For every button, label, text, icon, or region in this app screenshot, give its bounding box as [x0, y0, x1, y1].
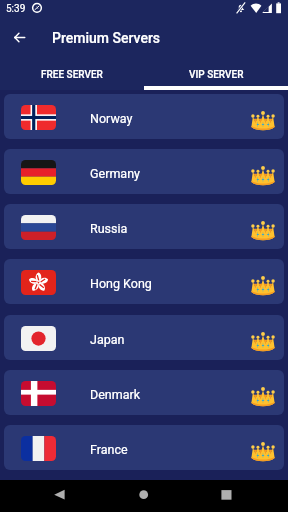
staticText: Russia — [90, 221, 128, 236]
staticText: Denmark — [90, 387, 141, 402]
staticText: VIP SERVER — [189, 69, 244, 81]
button[interactable]: Japan — [4, 315, 284, 360]
staticText: Germany — [90, 166, 140, 181]
button[interactable]: Denmark — [4, 370, 284, 415]
button[interactable]: Back — [0, 18, 38, 56]
staticText: Norway — [90, 111, 133, 126]
staticText: Japan — [90, 332, 125, 347]
button[interactable]: VIP SERVER — [144, 56, 288, 90]
button[interactable]: Hong Kong — [4, 259, 284, 304]
button[interactable]: Russia — [4, 204, 284, 249]
staticText: Hong Kong — [90, 276, 152, 291]
button[interactable]: Norway — [4, 94, 284, 139]
staticText: FREE SERVER — [41, 69, 103, 81]
button[interactable]: Home — [114, 480, 174, 512]
staticText: Premium Servers — [52, 30, 161, 46]
button[interactable]: France — [4, 425, 284, 470]
button[interactable]: System back — [30, 480, 90, 512]
button[interactable]: FREE SERVER — [0, 56, 144, 90]
button[interactable]: Recents — [196, 480, 256, 512]
staticText: 5:39 — [6, 3, 26, 15]
button[interactable]: Germany — [4, 149, 284, 194]
staticText: France — [90, 442, 128, 457]
